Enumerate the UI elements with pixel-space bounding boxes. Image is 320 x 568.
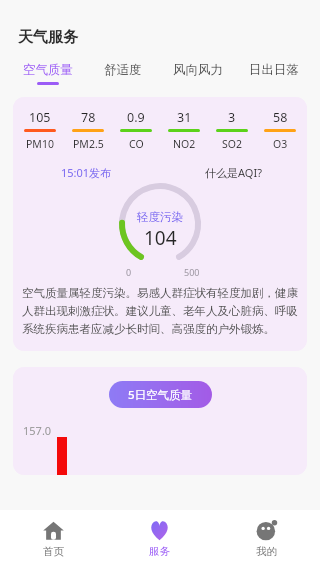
staticText: O3 bbox=[273, 137, 288, 151]
staticText: 500 bbox=[184, 266, 200, 278]
staticText: 空气质量属轻度污染。易感人群症状有轻度加剧，健康人群出现刺激症状。建议儿童、老年… bbox=[22, 286, 298, 337]
button[interactable]: 什么是AQI? bbox=[205, 165, 262, 180]
staticText: 天气服务 bbox=[18, 28, 78, 47]
staticText: CO bbox=[129, 137, 144, 151]
staticText: 舒适度 bbox=[104, 62, 142, 78]
staticText: 105 bbox=[29, 109, 51, 126]
staticText: 104 bbox=[144, 225, 177, 251]
button[interactable]: 我的 bbox=[213, 510, 320, 568]
button[interactable]: 15:01发布 bbox=[61, 165, 112, 180]
button[interactable]: 31 bbox=[160, 109, 208, 151]
button[interactable]: 5日空气质量 bbox=[109, 381, 212, 408]
staticText: 5日空气质量 bbox=[128, 387, 193, 403]
staticText: 78 bbox=[81, 109, 96, 126]
button[interactable]: 3 bbox=[208, 109, 256, 151]
staticText: 首页 bbox=[43, 545, 64, 558]
staticText: SO2 bbox=[222, 137, 242, 151]
button[interactable]: 风向风力 bbox=[160, 62, 236, 85]
staticText: PM10 bbox=[26, 137, 54, 151]
staticText: 31 bbox=[177, 109, 192, 126]
button[interactable]: 首页 bbox=[0, 510, 106, 568]
staticText: 日出日落 bbox=[249, 62, 299, 78]
button[interactable]: 58 bbox=[256, 109, 304, 151]
button[interactable]: 空气质量 bbox=[10, 62, 85, 85]
button[interactable]: 105 bbox=[16, 109, 64, 151]
button[interactable]: 服务 bbox=[106, 510, 213, 568]
staticText: 0.9 bbox=[127, 109, 145, 126]
staticText: 风向风力 bbox=[173, 62, 223, 78]
staticText: PM2.5 bbox=[73, 137, 104, 151]
button[interactable]: 日出日落 bbox=[236, 62, 312, 85]
button[interactable]: 78 bbox=[64, 109, 112, 151]
staticText: 0 bbox=[126, 266, 132, 278]
staticText: 58 bbox=[273, 109, 288, 126]
staticText: 157.0 bbox=[23, 423, 52, 438]
other: 首页 bbox=[43, 520, 64, 541]
other: 我的 bbox=[256, 520, 277, 541]
button[interactable]: 0.9 bbox=[112, 109, 160, 151]
staticText: 我的 bbox=[256, 545, 277, 558]
staticText: 服务 bbox=[149, 545, 170, 558]
staticText: 轻度污染 bbox=[137, 210, 183, 224]
other: 服务 bbox=[149, 520, 170, 541]
staticText: 3 bbox=[228, 109, 236, 126]
button[interactable]: 舒适度 bbox=[85, 62, 160, 85]
staticText: NO2 bbox=[173, 137, 196, 151]
staticText: 空气质量 bbox=[23, 62, 73, 78]
